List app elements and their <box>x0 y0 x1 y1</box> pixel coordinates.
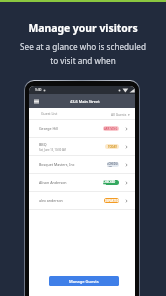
staticText: ARRIVING <box>104 127 118 131</box>
staticText: SCHEDULED <box>107 162 119 167</box>
staticText: DEPARTED <box>105 199 119 203</box>
button[interactable]: Bosquet Masters, Inc <box>29 156 135 173</box>
button[interactable]: Manage Guests <box>49 276 119 286</box>
button[interactable]: Menu <box>33 98 40 105</box>
button[interactable]: alex anderson <box>29 192 135 209</box>
staticText: Guest List <box>41 111 58 116</box>
staticText: Sat, June 15, 10:00 AM <box>39 148 66 152</box>
staticText: BBQ <box>39 142 47 147</box>
staticText: All Guests ▾ <box>111 112 130 116</box>
button[interactable]: Alison Anderson <box>29 174 135 191</box>
staticText: See at a glance who is scheduled to visi… <box>20 41 146 66</box>
button[interactable]: BBQ <box>29 138 135 155</box>
staticText: Manage Guests <box>69 279 99 284</box>
staticText: Alison Anderson <box>39 180 67 185</box>
staticText: 43-6 Main Street <box>70 99 100 104</box>
staticText: 9:30 <box>35 88 42 92</box>
staticText: Manage your visitors <box>28 21 138 35</box>
staticText: alex anderson <box>39 198 63 203</box>
staticText: Bosquet Masters, Inc <box>39 162 75 167</box>
button[interactable]: George Hill <box>29 120 135 137</box>
staticText: George Hill <box>39 126 58 131</box>
staticText: CHECKED IN <box>103 180 119 185</box>
staticText: TODAY <box>108 145 117 149</box>
